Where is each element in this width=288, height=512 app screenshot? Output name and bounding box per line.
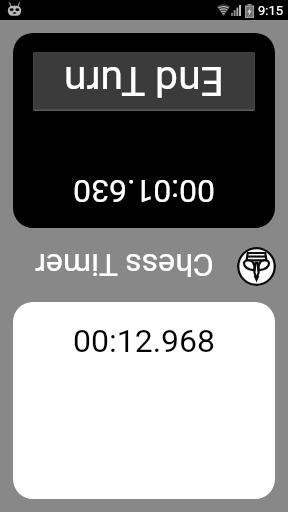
- button[interactable]: 00:01.630: [13, 33, 275, 228]
- button[interactable]: Chess Timer settings: [237, 247, 276, 286]
- staticText: 00:01.630: [13, 172, 275, 210]
- staticText: 9:15: [258, 3, 284, 18]
- button[interactable]: 00:12.968: [13, 302, 275, 499]
- button[interactable]: End Turn: [33, 52, 255, 111]
- staticText: 00:12.968: [13, 322, 275, 360]
- staticText: End Turn: [63, 57, 224, 105]
- staticText: Chess Timer: [12, 246, 237, 284]
